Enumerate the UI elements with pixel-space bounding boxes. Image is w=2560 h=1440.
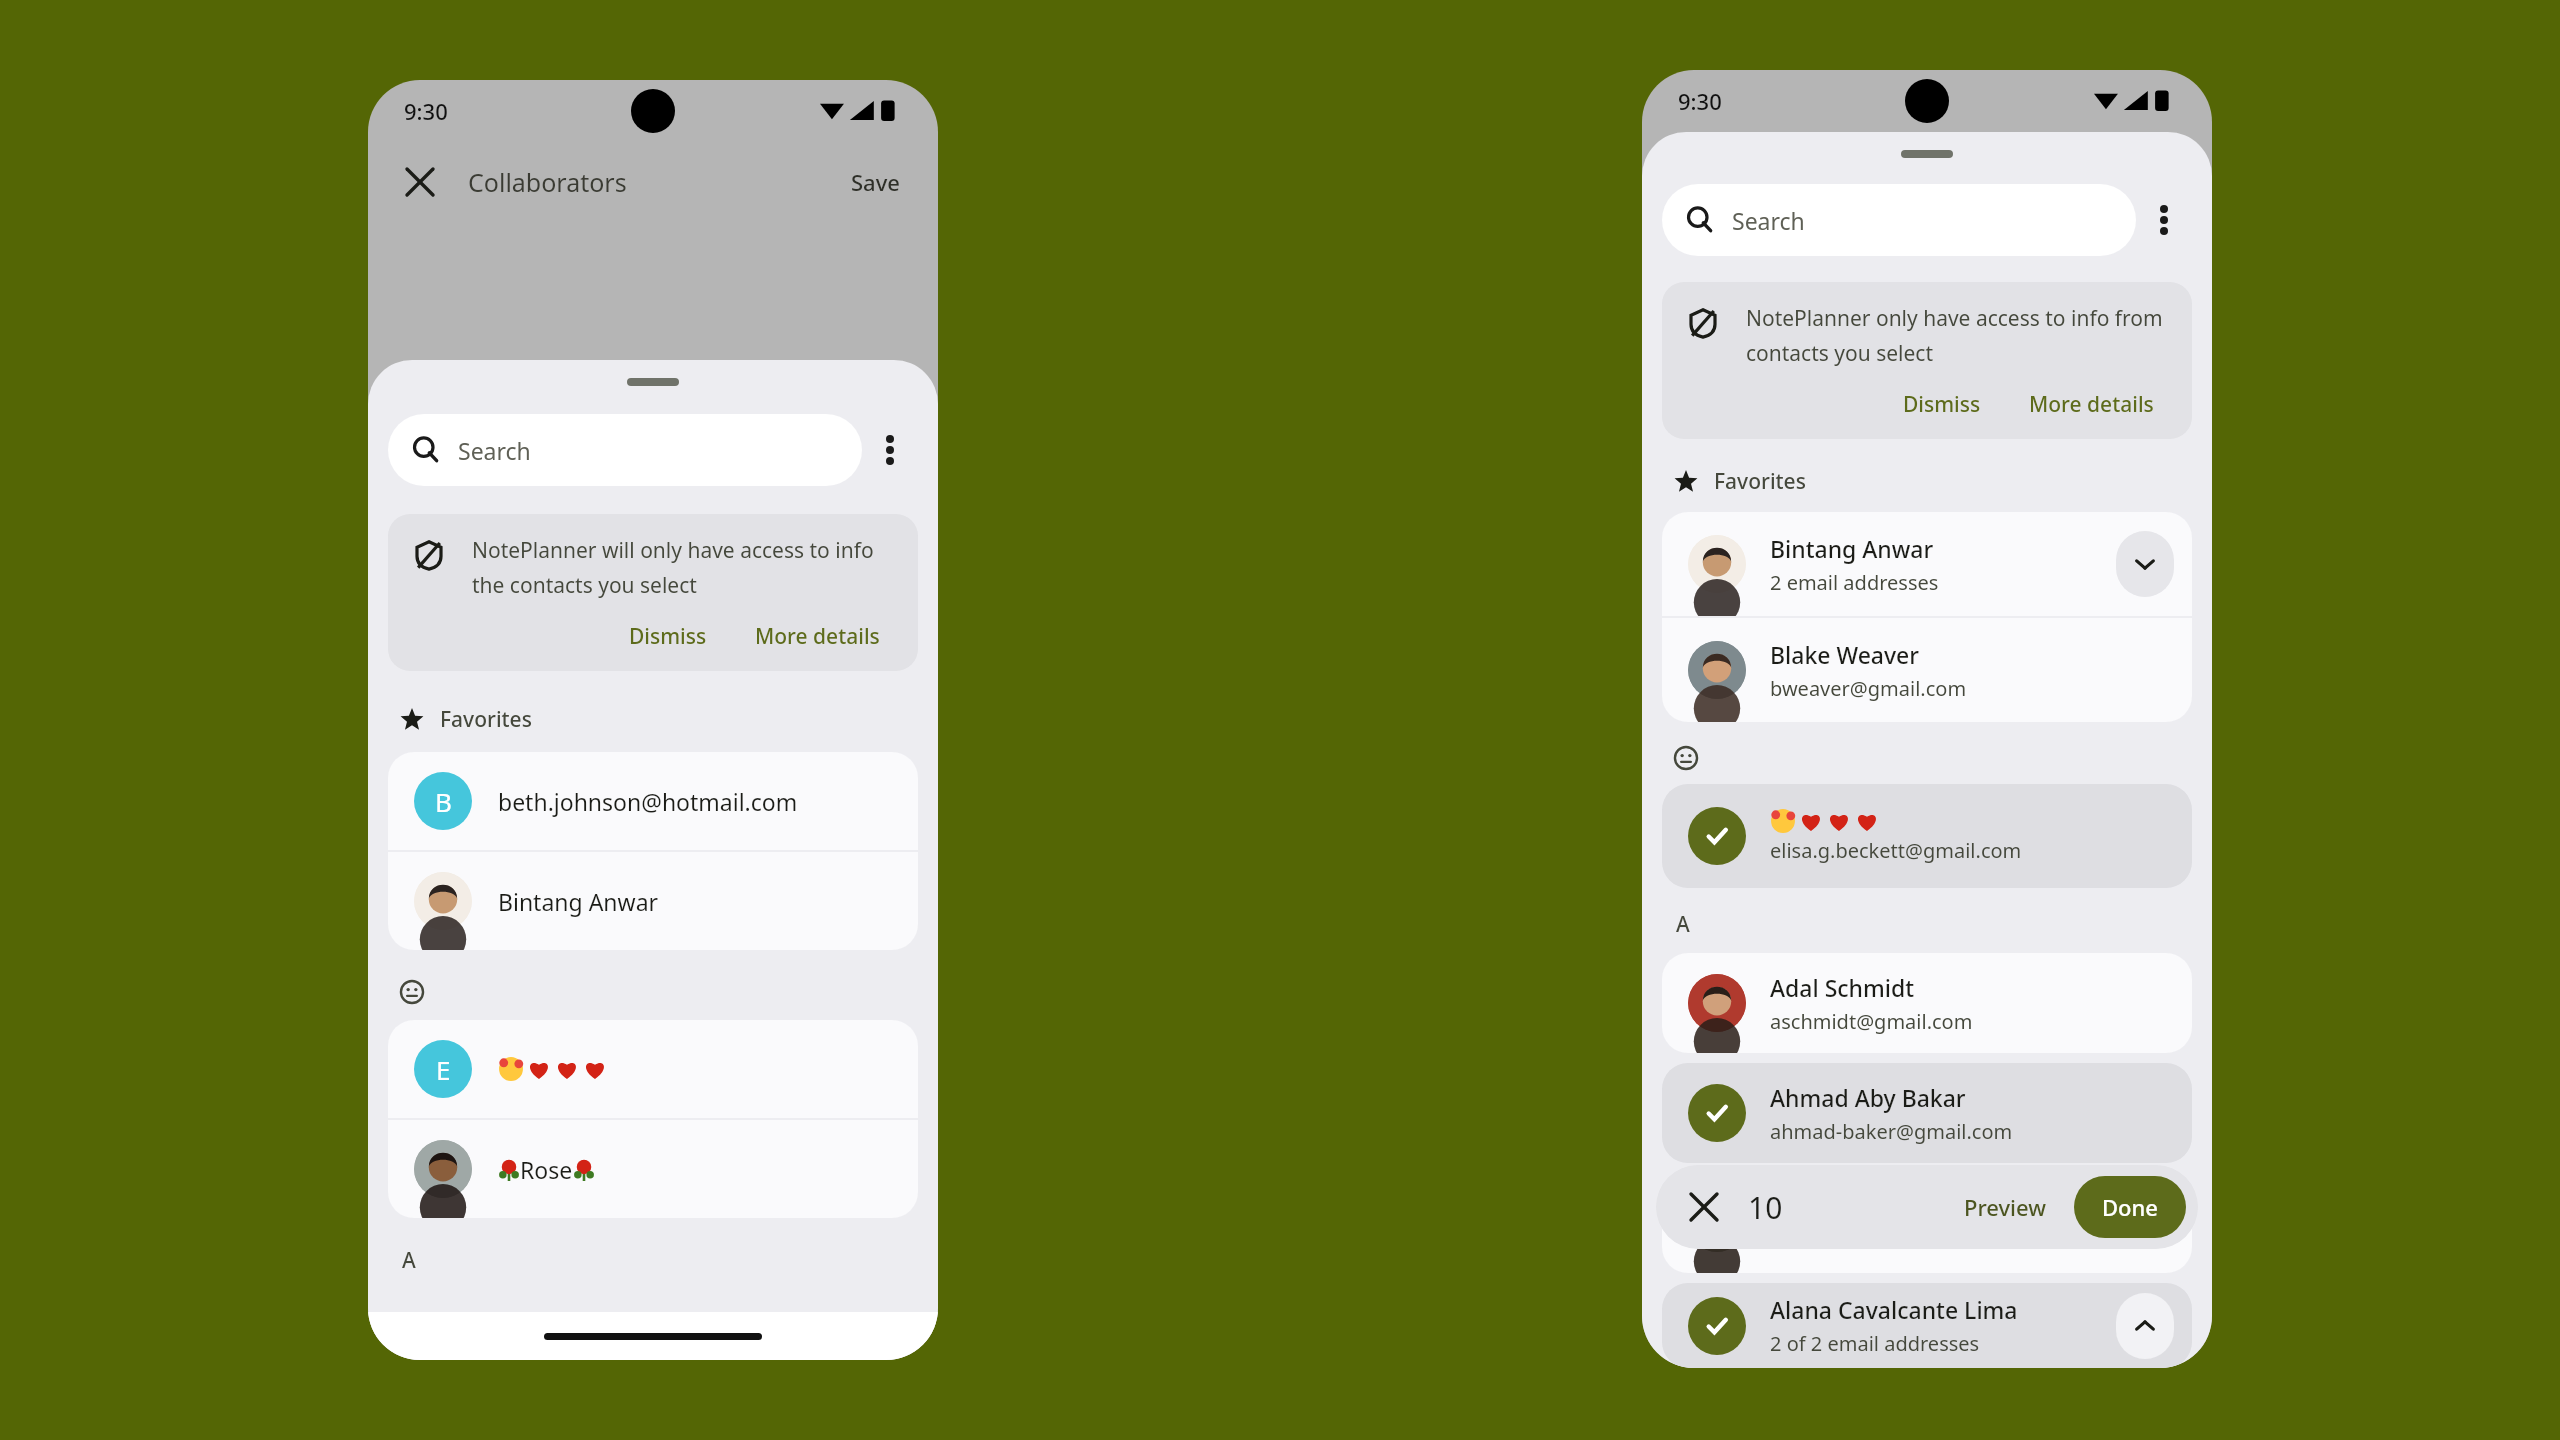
button[interactable]: elisa.g.beckett@gmail.com: [1662, 784, 2192, 888]
staticText: Adal Schmidt: [1770, 972, 1915, 1003]
staticText: NotePlanner will only have access to inf…: [472, 536, 896, 565]
button[interactable]: B: [388, 752, 918, 850]
staticText: contacts you select: [1746, 339, 1933, 368]
staticText: Collaborators: [468, 165, 627, 199]
staticText: Alana Cavalcante Lima: [1770, 1294, 2018, 1325]
staticText: 9:30: [1678, 86, 1722, 116]
staticText: ahmad-baker@gmail.com: [1770, 1118, 2013, 1145]
staticText: 2 of 2 email addresses: [1770, 1330, 1980, 1357]
staticText: E: [436, 1052, 451, 1087]
staticText: 2 email addresses: [1770, 569, 1939, 596]
button[interactable]: Ahmad Aby Bakar: [1662, 1173, 2192, 1273]
button[interactable]: Preview: [1950, 1182, 2060, 1232]
staticText: 9:30: [404, 96, 448, 126]
staticText: Blake Weaver: [1770, 639, 1920, 670]
button[interactable]: Blake Weaver: [1662, 618, 2192, 722]
button[interactable]: More details: [739, 614, 896, 659]
staticText: Dismiss: [629, 622, 707, 651]
button[interactable]: Save: [841, 159, 910, 205]
button[interactable]: Ahmad Aby Bakar: [1662, 1063, 2192, 1163]
staticText: Bintang Anwar: [1770, 533, 1934, 564]
staticText: More details: [2029, 390, 2154, 419]
button[interactable]: More options: [2136, 184, 2192, 256]
button[interactable]: Search: [1662, 184, 2136, 256]
staticText: A: [1676, 910, 1690, 939]
staticText: aschmidt@gmail.com: [1770, 1008, 1973, 1035]
button[interactable]: More options: [862, 414, 918, 486]
button[interactable]: Dismiss: [1887, 382, 1997, 427]
button[interactable]: Collapse: [2116, 1293, 2174, 1359]
button[interactable]: NotePlanner will only have access to inf…: [388, 514, 918, 671]
staticText: bweaver@gmail.com: [1770, 675, 1967, 702]
staticText: Ahmad Aby Bakar: [1770, 1208, 1966, 1239]
staticText: Favorites: [1714, 467, 1806, 496]
staticText: More details: [755, 622, 880, 651]
button[interactable]: Rose: [388, 1120, 918, 1218]
staticText: Save: [851, 167, 900, 197]
staticText: Favorites: [440, 705, 532, 734]
staticText: A: [402, 1246, 416, 1275]
staticText: Dismiss: [1903, 390, 1981, 419]
button[interactable]: Done: [2074, 1176, 2186, 1238]
staticText: Bintang Anwar: [498, 886, 659, 917]
button[interactable]: Bintang Anwar: [1662, 512, 2192, 616]
staticText: 10: [1748, 1187, 1783, 1228]
button[interactable]: Alana Cavalcante Lima: [1662, 1283, 2192, 1368]
staticText: B: [435, 784, 452, 819]
staticText: the contacts you select: [472, 571, 697, 600]
button[interactable]: Expand: [2116, 531, 2174, 597]
staticText: Search: [458, 435, 531, 466]
button[interactable]: Dismiss: [613, 614, 723, 659]
staticText: beth.johnson@hotmail.com: [498, 786, 798, 817]
staticText: Preview: [1964, 1192, 2046, 1222]
button[interactable]: Bintang Anwar: [388, 852, 918, 950]
staticText: Done: [2102, 1192, 2158, 1222]
staticText: NotePlanner only have access to info fro…: [1746, 304, 2170, 333]
button[interactable]: Close: [396, 158, 444, 206]
staticText: Rose: [520, 1154, 573, 1185]
staticText: Ahmad Aby Bakar: [1770, 1082, 1966, 1113]
button[interactable]: Search: [388, 414, 862, 486]
button[interactable]: E: [388, 1020, 918, 1118]
staticText: elisa.g.beckett@gmail.com: [1770, 837, 2022, 864]
button[interactable]: Adal Schmidt: [1662, 953, 2192, 1053]
button[interactable]: NotePlanner only have access to info fro…: [1662, 282, 2192, 439]
staticText: Search: [1732, 205, 1805, 236]
button[interactable]: Clear selection: [1678, 1181, 1730, 1233]
button[interactable]: More details: [2013, 382, 2170, 427]
